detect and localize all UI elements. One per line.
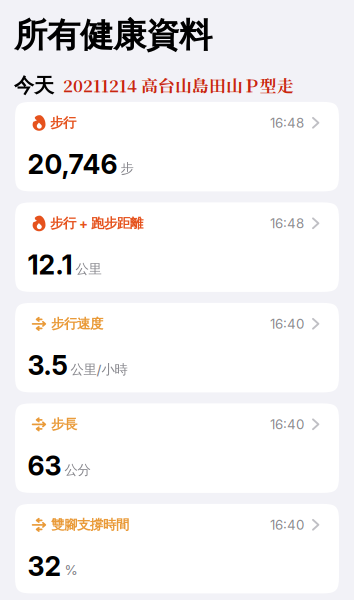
button[interactable]: 步行速度 — [15, 303, 339, 392]
staticText: 16:48 — [270, 215, 304, 231]
staticText: 16:40 — [270, 517, 304, 533]
staticText: 步行 — [50, 115, 76, 131]
staticText: 20211214 高台山島田山Ｐ型走 — [63, 73, 294, 97]
staticText: 32 — [27, 551, 61, 582]
staticText: 步行速度 — [51, 316, 103, 332]
staticText: 63 — [27, 450, 61, 482]
staticText: 公里 — [75, 261, 101, 277]
staticText: 雙腳支撐時間 — [51, 517, 129, 533]
button[interactable]: 雙腳支撐時間 — [15, 504, 339, 593]
staticText: 所有健康資料 — [14, 15, 212, 56]
staticText: 16:48 — [270, 115, 304, 131]
staticText: % — [64, 562, 77, 578]
staticText: 3.5 — [27, 350, 67, 381]
button[interactable]: 步長 — [15, 403, 339, 493]
staticText: 今天 — [14, 73, 54, 98]
staticText: 步行 + 跑步距離 — [50, 215, 143, 232]
staticText: 公分 — [64, 462, 90, 478]
staticText: 20,746 — [27, 149, 117, 180]
button[interactable]: 步行 + 跑步距離 — [15, 202, 339, 292]
staticText: 12.1 — [27, 249, 72, 281]
staticText: 步長 — [51, 416, 77, 433]
staticText: 16:40 — [270, 416, 304, 432]
staticText: 公里/小時 — [70, 361, 127, 378]
button[interactable]: 步行 — [15, 102, 339, 191]
staticText: 16:40 — [270, 316, 304, 332]
staticText: 步 — [120, 160, 133, 177]
